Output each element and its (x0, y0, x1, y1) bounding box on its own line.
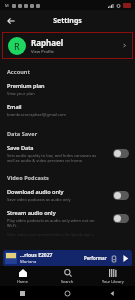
staticText: Video Podcasts (7, 174, 49, 182)
staticText: Play video podcasts as audio only when n… (7, 218, 95, 228)
button[interactable]: Save Data (0, 140, 135, 166)
button[interactable]: Download audio only (0, 184, 135, 205)
staticText: Account (7, 68, 30, 76)
staticText: M (5, 3, 9, 8)
button[interactable]: Play (120, 253, 130, 263)
staticText: Note: video is not streamed when the Spo… (7, 232, 94, 237)
button[interactable]: Recents (0, 286, 45, 300)
button[interactable]: ...rious E2027 (3, 250, 132, 266)
staticText: Mariana (20, 259, 37, 265)
staticText: Home (17, 279, 28, 284)
button[interactable]: Your Library (90, 266, 135, 286)
button[interactable]: Back (3, 13, 19, 29)
staticText: Email (7, 103, 22, 111)
button[interactable]: Search (45, 266, 90, 286)
button[interactable]: Email (0, 99, 135, 120)
staticText: Save Data (7, 144, 34, 152)
staticText: ...rious E2027 (20, 252, 53, 259)
staticText: Save video podcasts as audio only (7, 197, 71, 202)
button[interactable]: Back (90, 286, 135, 300)
staticText: Performar (84, 255, 107, 261)
button[interactable]: Save Data (113, 149, 129, 158)
button[interactable]: Stream audio only (0, 205, 135, 231)
staticText: Search (61, 279, 74, 284)
staticText: View your plan (7, 91, 35, 96)
staticText: Data Saver (7, 130, 38, 138)
button[interactable]: Download audio only (113, 191, 129, 200)
button[interactable]: Home (45, 286, 90, 300)
button[interactable]: Premium plan (0, 78, 135, 99)
button[interactable]: Home (0, 266, 45, 286)
staticText: Stream audio only (7, 209, 56, 217)
staticText: Sets audio quality to low, and hides can… (7, 153, 97, 163)
button[interactable]: R (3, 33, 132, 58)
staticText: Raphael (31, 37, 64, 48)
staticText: Download audio only (7, 188, 64, 196)
staticText: Settings (53, 16, 82, 26)
button[interactable]: Connect to a device (109, 254, 118, 263)
staticText: brainbruiseraphael@gmail.com (7, 112, 67, 117)
staticText: View Profile (31, 49, 54, 55)
button[interactable]: Stream audio only (113, 214, 129, 223)
staticText: Your Library (102, 279, 124, 284)
staticText: Premium plan (7, 82, 45, 90)
staticText: R (14, 40, 20, 52)
